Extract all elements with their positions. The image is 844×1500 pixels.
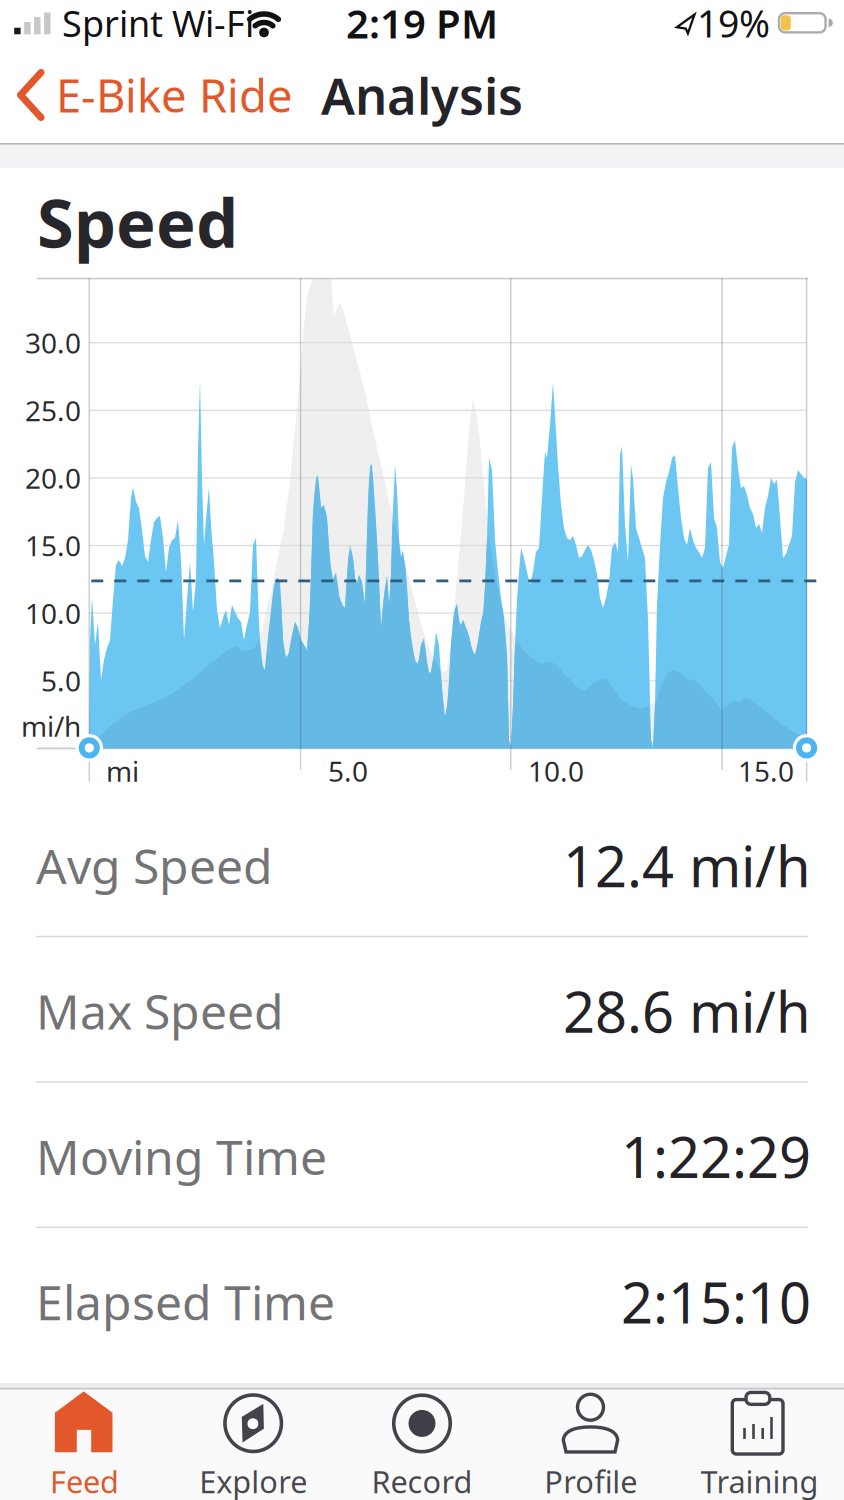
staticText: Speed <box>37 178 238 266</box>
staticText: 5.0 <box>41 662 81 699</box>
button[interactable]: Explore <box>169 1390 338 1500</box>
staticText: Moving Time <box>36 1124 327 1188</box>
button[interactable]: Profile <box>506 1390 675 1500</box>
staticText: 30.0 <box>25 324 81 361</box>
staticText: 28.6 mi/h <box>563 974 811 1048</box>
staticText: 10.0 <box>25 594 81 632</box>
staticText: Max Speed <box>36 979 284 1043</box>
staticText: 2:15:10 <box>621 1264 811 1339</box>
staticText: Avg Speed <box>36 834 273 897</box>
staticText: Training <box>701 1461 819 1500</box>
staticText: 15.0 <box>25 527 81 564</box>
staticText: 5.0 <box>328 752 368 790</box>
button[interactable]: Back to E-Bike Ride <box>0 65 293 125</box>
button[interactable]: Feed <box>0 1390 169 1500</box>
staticText: 25.0 <box>25 392 81 429</box>
staticText: Elapsed Time <box>36 1270 335 1333</box>
staticText: Record <box>371 1461 472 1500</box>
button[interactable]: Record <box>338 1390 506 1500</box>
button[interactable]: Training <box>675 1390 844 1500</box>
staticText: Analysis <box>321 61 523 129</box>
staticText: Sprint Wi-Fi <box>62 0 254 47</box>
staticText: Profile <box>544 1461 637 1500</box>
staticText: E-Bike Ride <box>56 65 293 125</box>
staticText: 10.0 <box>528 752 584 790</box>
staticText: 2:19 PM <box>346 0 498 49</box>
staticText: Explore <box>199 1461 307 1500</box>
staticText: Feed <box>50 1461 119 1500</box>
staticText: 12.4 mi/h <box>563 828 811 903</box>
staticText: 15.0 <box>738 752 794 790</box>
staticText: 20.0 <box>25 459 81 496</box>
staticText: mi/h <box>21 707 81 745</box>
staticText: mi <box>106 752 139 790</box>
staticText: 19% <box>697 0 770 48</box>
staticText: 1:22:29 <box>621 1119 811 1193</box>
